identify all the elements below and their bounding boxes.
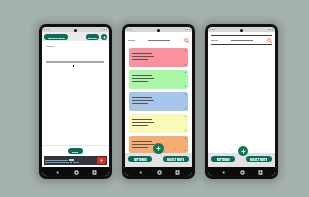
button[interactable]: Back	[219, 168, 227, 176]
button[interactable]	[129, 136, 188, 153]
button[interactable]: Recents	[173, 168, 181, 176]
button[interactable]: Recents	[256, 168, 264, 176]
button[interactable]: Add note	[238, 146, 248, 156]
staticText: SELECT NOTE	[250, 158, 268, 161]
button[interactable]	[44, 156, 107, 165]
button[interactable]: SAVE	[68, 148, 83, 154]
button[interactable]: Home	[238, 168, 246, 176]
button[interactable]: SELECT NOTE	[246, 156, 272, 162]
button[interactable]: SETTINGS	[128, 156, 152, 162]
staticText: SELECT NOTE	[167, 158, 185, 161]
button[interactable]	[129, 92, 188, 111]
button[interactable]	[129, 70, 188, 89]
button[interactable]: SETTINGS	[211, 156, 235, 162]
button[interactable]	[129, 114, 188, 133]
staticText: SETTINGS	[134, 158, 147, 161]
button[interactable]: COLOR	[86, 34, 99, 40]
button[interactable]: Back	[53, 168, 61, 176]
staticText: DELETE NOTE	[48, 36, 65, 39]
button[interactable]: Add note	[153, 143, 164, 154]
staticText: SAVE	[72, 150, 79, 153]
button[interactable]	[129, 48, 188, 67]
button[interactable]: Search	[184, 38, 189, 43]
button[interactable]: SELECT NOTE	[163, 156, 189, 162]
button[interactable]: Home	[72, 168, 80, 176]
button[interactable]: Add	[101, 34, 107, 40]
button[interactable]: DELETE NOTE	[44, 34, 68, 40]
button[interactable]: Search	[267, 38, 272, 43]
button[interactable]: Back	[136, 168, 144, 176]
staticText: SETTINGS	[217, 158, 230, 161]
staticText: COLOR	[88, 36, 97, 39]
button[interactable]: Home	[155, 168, 163, 176]
button[interactable]: Recents	[90, 168, 98, 176]
